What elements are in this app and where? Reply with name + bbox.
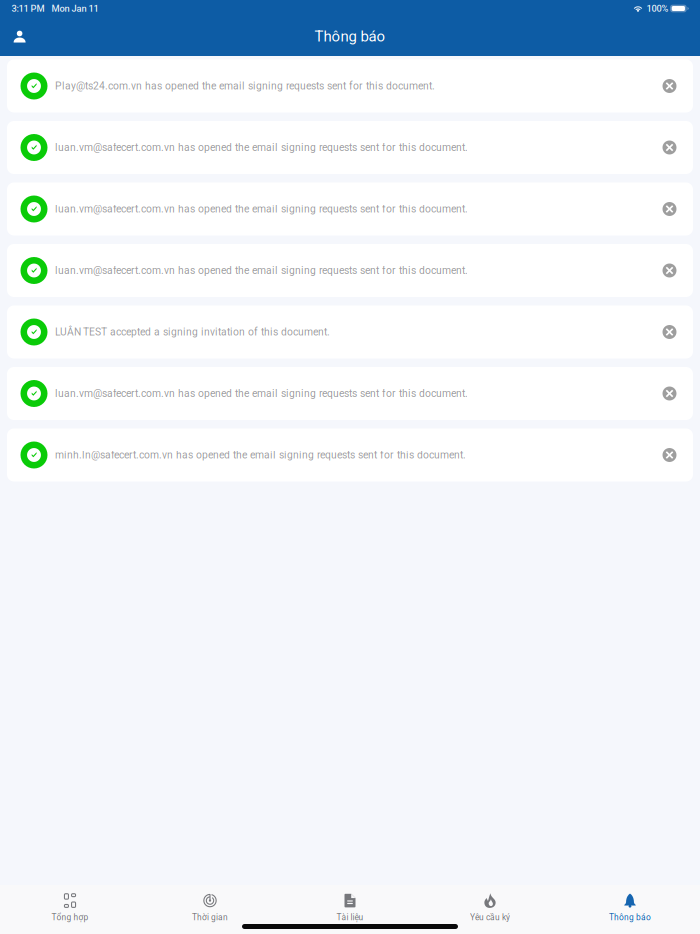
staticText: LUÂN TEST accepted a signing invitation … [55,326,330,338]
button[interactable]: Tài liệu [280,891,420,924]
button[interactable]: luan.vm@safecert.com.vn has opened the e… [7,182,693,235]
staticText: Thời gian [192,913,228,922]
button[interactable]: luan.vm@safecert.com.vn has opened the e… [7,367,693,420]
staticText: luan.vm@safecert.com.vn has opened the e… [55,387,468,399]
staticText: Play@ts24.com.vn has opened the email si… [55,80,435,92]
staticText: Thông báo [314,28,385,45]
staticText: 3:11 PM [11,3,44,14]
button[interactable]: Yêu cầu ký [420,891,560,924]
button[interactable]: luan.vm@safecert.com.vn has opened the e… [7,244,693,297]
staticText: luan.vm@safecert.com.vn has opened the e… [55,203,468,215]
staticText: 100% [647,3,669,14]
staticText: Thông báo [609,913,651,922]
button[interactable]: Thông báo [560,891,700,924]
button[interactable]: minh.ln@safecert.com.vn has opened the e… [7,428,693,481]
button[interactable]: Tổng hợp [0,891,140,924]
button[interactable]: luan.vm@safecert.com.vn has opened the e… [7,121,693,174]
button[interactable]: Play@ts24.com.vn has opened the email si… [7,59,693,112]
staticText: luan.vm@safecert.com.vn has opened the e… [55,264,468,276]
button[interactable]: Thời gian [140,891,280,924]
staticText: Tài liệu [336,913,363,922]
staticText: Mon Jan 11 [51,3,98,14]
staticText: minh.ln@safecert.com.vn has opened the e… [55,449,466,461]
staticText: Tổng hợp [51,913,88,922]
staticText: Yêu cầu ký [470,913,510,922]
staticText: luan.vm@safecert.com.vn has opened the e… [55,141,468,153]
button[interactable]: LUÂN TEST accepted a signing invitation … [7,305,693,358]
button[interactable]: Account [0,22,39,50]
